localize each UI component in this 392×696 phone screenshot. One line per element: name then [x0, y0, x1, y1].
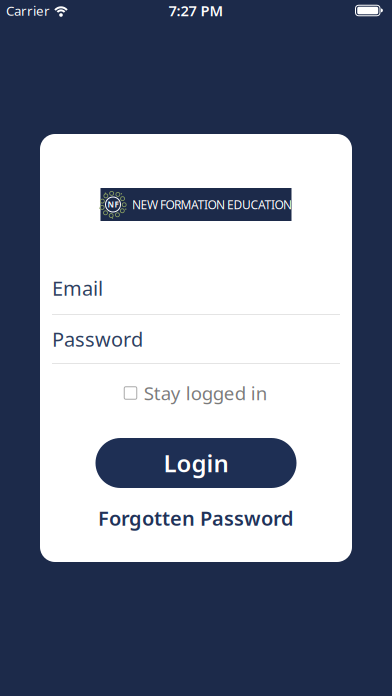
- staticText: Email: [52, 275, 103, 301]
- staticText: Password: [52, 326, 143, 352]
- button[interactable]: Stay logged in: [124, 380, 268, 406]
- button[interactable]: Password: [40, 327, 352, 364]
- staticText: Forgotten Password: [98, 505, 294, 531]
- button[interactable]: Email: [40, 276, 352, 315]
- staticText: 7:27 PM: [168, 1, 223, 20]
- button[interactable]: Login: [95, 438, 296, 488]
- staticText: Carrier: [6, 2, 50, 19]
- staticText: NEW FORMATION EDUCATION: [132, 196, 292, 212]
- button[interactable]: Forgotten Password: [98, 505, 294, 531]
- staticText: Stay logged in: [144, 381, 268, 405]
- staticText: NF: [107, 199, 118, 210]
- staticText: Login: [163, 447, 228, 479]
